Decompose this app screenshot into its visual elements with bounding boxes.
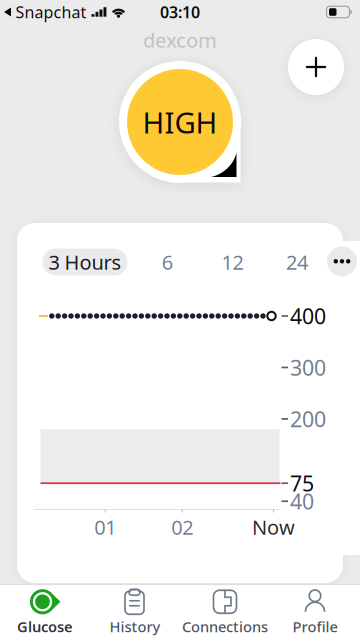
button[interactable]: Profile xyxy=(270,584,360,640)
staticText: 01 xyxy=(94,514,116,540)
staticText: HIGH xyxy=(142,102,217,141)
staticText: Connections xyxy=(182,617,268,636)
staticText: Profile xyxy=(292,617,337,636)
staticText: Glucose xyxy=(17,617,73,636)
button[interactable]: History xyxy=(90,584,180,640)
staticText: 03:10 xyxy=(160,1,200,23)
staticText: 3 Hours xyxy=(48,249,121,275)
button[interactable]: 24 xyxy=(277,247,317,277)
staticText: 24 xyxy=(286,249,308,275)
button[interactable]: More options xyxy=(327,246,357,276)
staticText: 75 xyxy=(290,469,314,497)
staticText: 12 xyxy=(221,249,243,275)
button[interactable]: Add xyxy=(288,39,344,95)
staticText: History xyxy=(109,617,160,636)
staticText: 40 xyxy=(290,487,314,515)
staticText: 200 xyxy=(290,405,326,433)
button[interactable]: Glucose xyxy=(0,584,90,640)
staticText: dexcom xyxy=(143,27,217,53)
staticText: 300 xyxy=(290,353,326,382)
staticText: Now xyxy=(252,514,295,540)
staticText: 6 xyxy=(162,249,173,275)
staticText: 02 xyxy=(171,514,193,540)
staticText: Snapchat xyxy=(15,1,86,23)
button[interactable]: 12 xyxy=(212,247,252,277)
button[interactable]: 6 xyxy=(147,247,187,277)
staticText: 400 xyxy=(290,302,326,330)
button[interactable]: 3 Hours xyxy=(42,248,127,275)
button[interactable]: Connections xyxy=(180,584,270,640)
